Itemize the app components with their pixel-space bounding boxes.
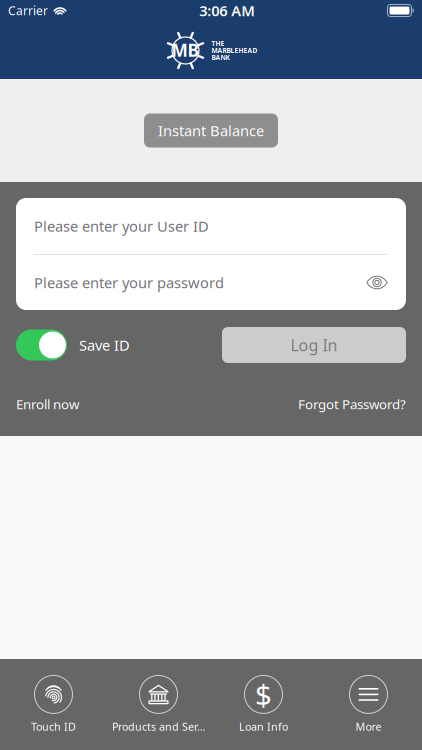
staticText: THE (211, 39, 224, 48)
staticText: 3:06 AM (199, 1, 255, 20)
button[interactable]: Log In (222, 327, 406, 363)
staticText: $ (255, 675, 272, 714)
button[interactable]: Enroll now (16, 389, 79, 419)
staticText: MB (171, 38, 199, 61)
button[interactable]: Forgot Password? (298, 389, 406, 419)
button[interactable]: Touch ID (1, 664, 106, 744)
staticText: Touch ID (31, 719, 76, 734)
button[interactable]: Save ID (16, 326, 130, 364)
staticText: Instant Balance (158, 121, 264, 140)
staticText: Loan Info (239, 719, 288, 734)
staticText: More (355, 719, 381, 734)
staticText: Log In (290, 334, 337, 356)
staticText: Save ID (79, 335, 130, 355)
button[interactable]: $ (211, 664, 316, 744)
staticText: Please enter your password (34, 273, 224, 292)
button[interactable]: More (316, 664, 421, 744)
staticText: Carrier (8, 2, 48, 18)
staticText: Please enter your User ID (34, 216, 209, 236)
staticText: Forgot Password? (298, 395, 406, 413)
staticText: Enroll now (16, 395, 79, 413)
staticText: Products and Ser… (112, 719, 205, 734)
staticText: BANK (211, 53, 229, 62)
button[interactable]: Products and Ser… (106, 664, 211, 744)
staticText: MARBLEHEAD (211, 46, 257, 55)
button[interactable]: Instant Balance (144, 113, 278, 147)
